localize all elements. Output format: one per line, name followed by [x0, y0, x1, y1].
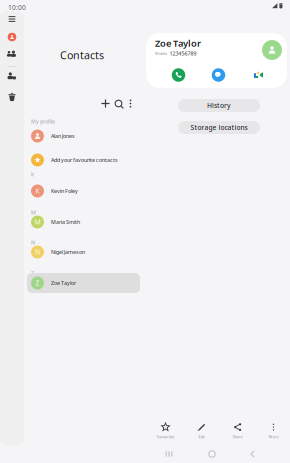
button[interactable]: N — [27, 242, 140, 262]
staticText: Contacts — [60, 48, 104, 62]
staticText: Z — [35, 279, 39, 287]
staticText: Storage locations — [190, 123, 247, 132]
button[interactable]: Edit — [183, 421, 219, 441]
button[interactable]: Menu — [0, 12, 24, 26]
staticText: Share — [232, 434, 242, 439]
staticText: M — [31, 209, 36, 216]
button[interactable]: Alan Jones — [27, 126, 140, 146]
staticText: Favourites — [156, 434, 174, 439]
button[interactable]: Add contact — [98, 97, 113, 110]
staticText: Nigel Jameson — [51, 248, 85, 256]
staticText: N — [35, 248, 40, 256]
staticText: Alan Jones — [51, 132, 75, 140]
button[interactable]: Z — [27, 273, 140, 293]
button[interactable]: More options — [124, 97, 137, 110]
button[interactable]: More — [255, 421, 290, 441]
button[interactable]: Contacts — [0, 30, 24, 44]
staticText: Z — [31, 270, 34, 277]
staticText: Zoe Taylor — [51, 279, 76, 287]
staticText: Edit — [198, 434, 204, 439]
button[interactable]: Manage contacts — [0, 70, 24, 82]
button[interactable]: Home — [191, 447, 233, 461]
button[interactable]: Groups — [0, 48, 24, 60]
button[interactable]: Add your favourite contacts — [27, 150, 140, 170]
staticText: M — [34, 218, 40, 226]
staticText: 10:00 — [8, 3, 26, 12]
button[interactable]: Storage locations — [178, 121, 260, 134]
staticText: My profile — [31, 118, 55, 125]
button[interactable]: Recents — [147, 447, 191, 461]
staticText: Add your favourite contacts — [51, 156, 118, 164]
button[interactable]: Back — [233, 447, 273, 461]
button[interactable]: Video call — [249, 67, 267, 83]
staticText: Mobile — [155, 51, 167, 56]
staticText: Zoe Taylor — [155, 37, 201, 49]
staticText: K — [31, 171, 34, 178]
button[interactable]: Contacts — [27, 48, 137, 62]
button[interactable]: Message — [209, 67, 227, 83]
staticText: History — [207, 101, 231, 110]
button[interactable]: Trash — [0, 91, 24, 103]
button[interactable]: Favourites — [147, 421, 183, 441]
staticText: Kevin Foley — [51, 187, 78, 195]
button[interactable]: Call — [169, 67, 187, 83]
staticText: K — [35, 187, 39, 195]
staticText: Maria Smith — [51, 218, 80, 226]
staticText: N — [31, 239, 35, 246]
staticText: More — [268, 434, 278, 439]
staticText: 123456789 — [169, 50, 196, 57]
button[interactable]: Search — [113, 97, 124, 110]
button[interactable]: M — [27, 212, 140, 232]
button[interactable]: Share — [219, 421, 255, 441]
button[interactable]: K — [27, 181, 140, 201]
button[interactable]: History — [178, 99, 260, 112]
